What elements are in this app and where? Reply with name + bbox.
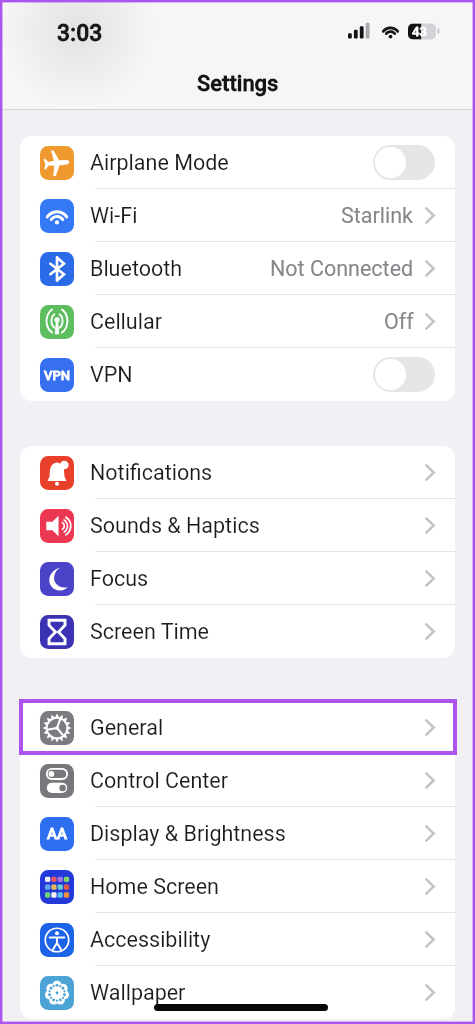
staticText: Sounds & Haptics (90, 513, 260, 538)
staticText: Focus (90, 566, 149, 591)
staticText: AA (47, 825, 67, 843)
staticText: Display & Brightness (90, 821, 286, 846)
staticText: Screen Time (90, 619, 210, 644)
staticText: Wi-Fi (90, 203, 138, 228)
staticText: Off (384, 309, 414, 334)
staticText: Airplane Mode (90, 150, 229, 175)
button[interactable]: Screen Time (20, 605, 455, 658)
staticText: Starlink (341, 203, 414, 228)
staticText: Control Center (90, 768, 229, 793)
staticText: VPN (90, 362, 133, 387)
button[interactable]: VPN (20, 348, 455, 401)
button[interactable]: Sounds & Haptics (20, 499, 455, 552)
button[interactable]: Control Center (20, 754, 455, 807)
button[interactable]: Accessibility (20, 913, 455, 966)
staticText: VPN (44, 368, 70, 383)
button[interactable]: Wi-Fi (20, 189, 455, 242)
staticText: Bluetooth (90, 256, 183, 281)
staticText: Wallpaper (90, 980, 186, 1005)
button[interactable]: Focus (20, 552, 455, 605)
button[interactable]: Home Screen (20, 860, 455, 913)
staticText: 43 (412, 24, 427, 39)
button[interactable]: Cellular (20, 295, 455, 348)
button[interactable]: Airplane Mode (20, 136, 455, 189)
staticText: Not Connected (270, 256, 414, 281)
button[interactable]: General (20, 701, 455, 754)
staticText: Notifications (90, 460, 213, 485)
staticText: Home Screen (90, 874, 219, 899)
staticText: Settings (197, 71, 279, 97)
staticText: 3:03 (57, 20, 103, 47)
button[interactable]: Notifications (20, 446, 455, 499)
button[interactable]: Wallpaper (20, 966, 455, 1019)
button[interactable]: Bluetooth (20, 242, 455, 295)
staticText: Cellular (90, 309, 162, 334)
staticText: Accessibility (90, 927, 211, 952)
staticText: General (90, 715, 164, 740)
button[interactable]: AA (20, 807, 455, 860)
